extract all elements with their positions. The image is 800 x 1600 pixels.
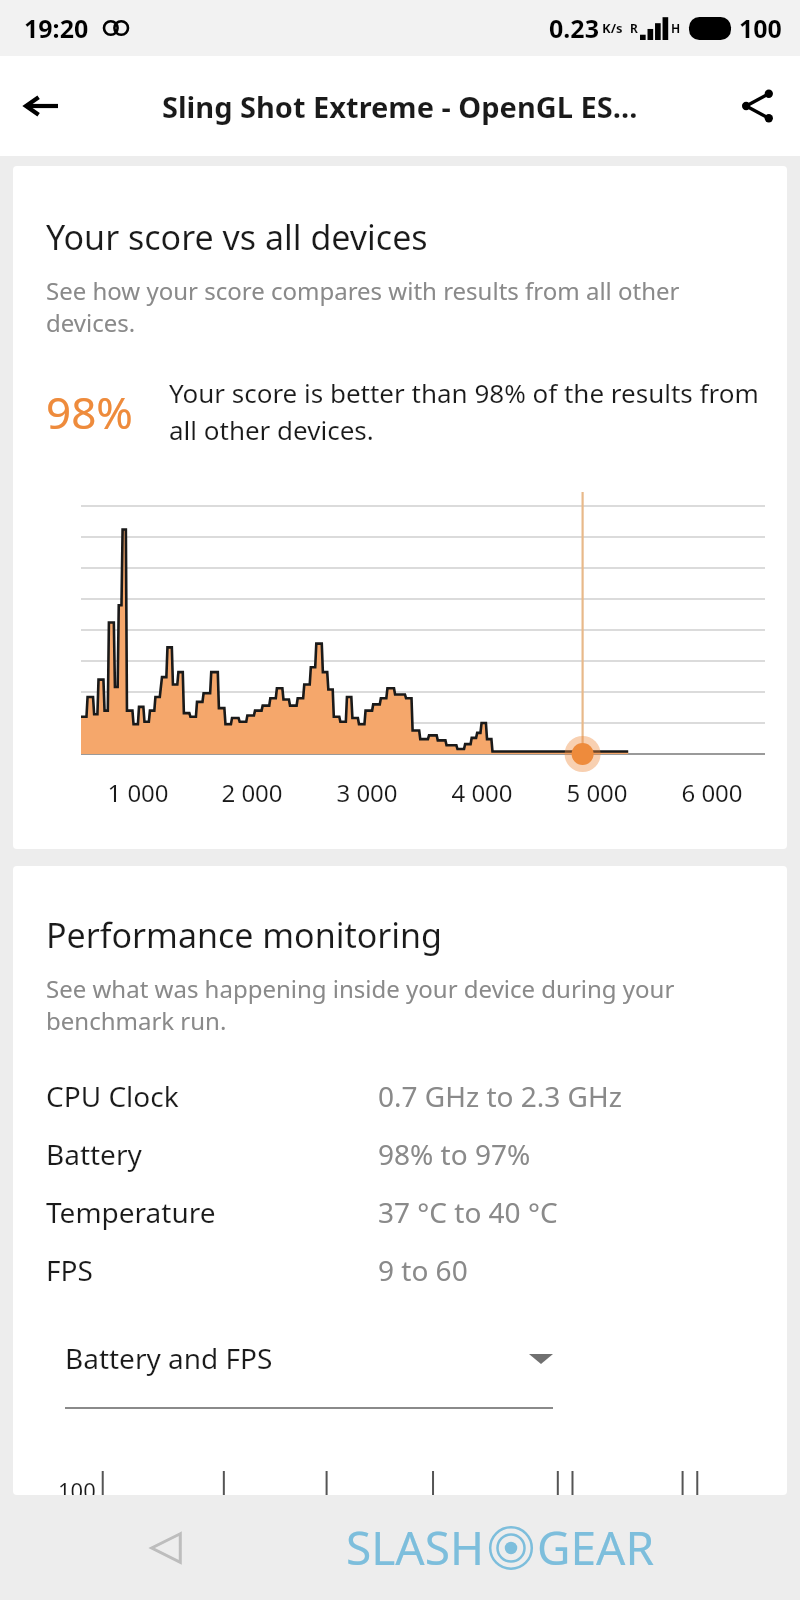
staticText: Battery and FPS (65, 1339, 273, 1377)
staticText: Temperature (46, 1193, 216, 1231)
staticText: 5 000 (566, 776, 628, 809)
staticText: Your score vs all devices (46, 214, 428, 260)
staticText: 2 000 (221, 776, 283, 809)
staticText: H (671, 20, 681, 36)
staticText: Battery (46, 1135, 142, 1173)
staticText: 98% to 97% (378, 1135, 531, 1173)
button[interactable]: Back (130, 1512, 202, 1584)
staticText: GEAR (537, 1516, 655, 1579)
button[interactable]: Battery and FPS (65, 1333, 553, 1383)
staticText: 1 000 (107, 776, 169, 809)
staticText: 6 000 (681, 776, 743, 809)
staticText: 3 000 (336, 776, 398, 809)
staticText: FPS (46, 1251, 93, 1289)
staticText: 4 000 (451, 776, 513, 809)
staticText: 19:20 (24, 11, 89, 45)
staticText: Sling Shot Extreme - OpenGL ES… (162, 87, 638, 126)
staticText: Performance monitoring (46, 912, 443, 958)
button[interactable]: Back (0, 64, 84, 148)
staticText: 100 (739, 11, 782, 45)
staticText: 100 (58, 1475, 96, 1495)
staticText: See how your score compares with results… (46, 274, 757, 339)
staticText: 0.23 (549, 11, 599, 45)
staticText: 98% (46, 382, 133, 442)
staticText: CPU Clock (46, 1077, 179, 1115)
staticText: SLASH (346, 1516, 485, 1579)
staticText: Your score is better than 98% of the res… (169, 375, 759, 448)
staticText: R (630, 20, 638, 36)
staticText: 9 to 60 (378, 1251, 468, 1289)
staticText: See what was happening inside your devic… (46, 972, 757, 1037)
staticText: 37 °C to 40 °C (378, 1193, 558, 1231)
staticText: 0.7 GHz to 2.3 GHz (378, 1077, 622, 1115)
staticText: K/s (602, 19, 623, 37)
button[interactable]: Share (716, 64, 800, 148)
